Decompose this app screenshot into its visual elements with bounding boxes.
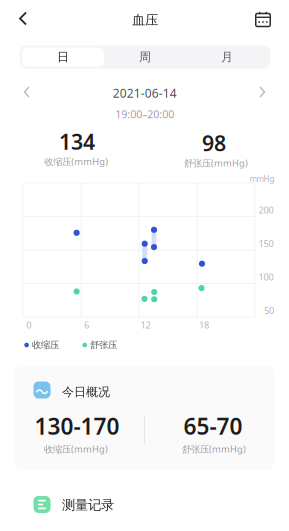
staticText: 50 xyxy=(264,304,274,317)
staticText: 舒张压(mmHg) xyxy=(182,443,246,455)
staticText: 舒张压(mmHg) xyxy=(184,157,248,169)
staticText: 12 xyxy=(140,319,150,331)
staticText: 周 xyxy=(139,50,151,64)
button[interactable]: Previous day xyxy=(15,82,39,102)
button[interactable]: Back xyxy=(11,4,43,34)
button[interactable]: 周 xyxy=(104,47,186,66)
staticText: 0 xyxy=(26,319,31,331)
staticText: 收缩压 xyxy=(32,339,59,351)
button[interactable]: 月 xyxy=(186,47,268,66)
staticText: 测量记录 xyxy=(62,497,114,513)
button[interactable]: 日 xyxy=(22,47,104,66)
staticText: 日 xyxy=(57,50,69,64)
staticText: 130-170 xyxy=(34,411,119,441)
staticText: 150 xyxy=(258,237,273,250)
staticText: 6 xyxy=(84,319,89,331)
staticText: 200 xyxy=(258,204,273,216)
staticText: 2021-06-14 xyxy=(113,85,177,101)
staticText: 100 xyxy=(258,271,273,283)
staticText: 收缩压(mmHg) xyxy=(44,443,108,455)
staticText: 98 xyxy=(202,129,226,157)
button[interactable]: Next day xyxy=(250,82,274,102)
staticText: 18 xyxy=(199,319,209,331)
staticText: 今日概况 xyxy=(62,385,110,399)
staticText: 血压 xyxy=(132,12,158,28)
staticText: 65-70 xyxy=(183,411,242,441)
staticText: 19:00–20:00 xyxy=(115,107,174,121)
staticText: 月 xyxy=(221,50,233,64)
staticText: 134 xyxy=(59,127,95,156)
button[interactable]: Calendar xyxy=(248,4,278,34)
staticText: 收缩压(mmHg) xyxy=(44,155,108,168)
staticText: mmHg xyxy=(249,174,274,184)
staticText: 舒张压 xyxy=(90,339,117,351)
